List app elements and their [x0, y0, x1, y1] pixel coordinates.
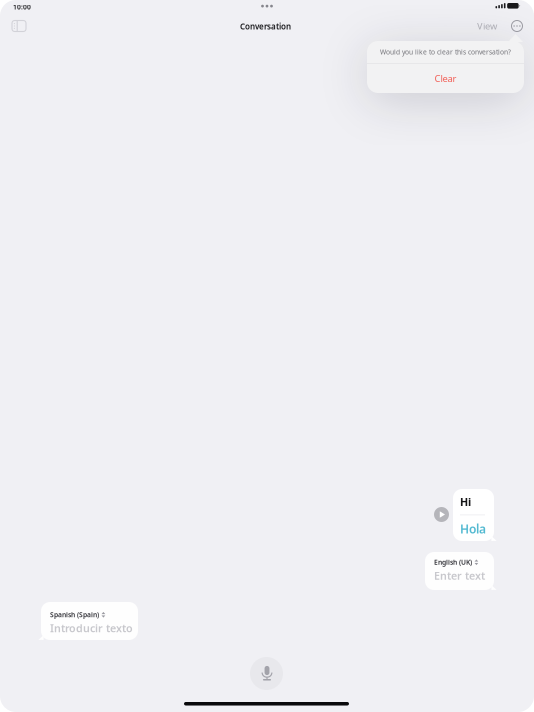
staticText: Would you like to clear this conversatio… — [380, 48, 511, 56]
button[interactable]: View — [473, 13, 501, 39]
button[interactable]: English (UK) — [425, 552, 494, 590]
staticText: English (UK) — [434, 558, 472, 567]
staticText: Conversation — [240, 21, 291, 32]
staticText: Hola — [460, 521, 486, 537]
staticText: Spanish (Spain) — [50, 610, 99, 619]
button[interactable]: Spanish (Spain) — [41, 602, 138, 640]
staticText: Clear — [434, 72, 456, 84]
button[interactable]: More — [505, 13, 529, 39]
staticText: Enter text — [434, 568, 485, 583]
button[interactable]: Clear — [367, 64, 524, 93]
staticText: Introducir texto — [50, 621, 133, 635]
button[interactable]: Start listening — [250, 657, 283, 690]
staticText: Hi — [460, 495, 471, 509]
staticText: View — [477, 20, 497, 32]
button[interactable]: Play translation — [434, 507, 449, 522]
button[interactable]: Show Sidebar — [4, 13, 34, 39]
staticText: 10:00 — [13, 2, 31, 11]
